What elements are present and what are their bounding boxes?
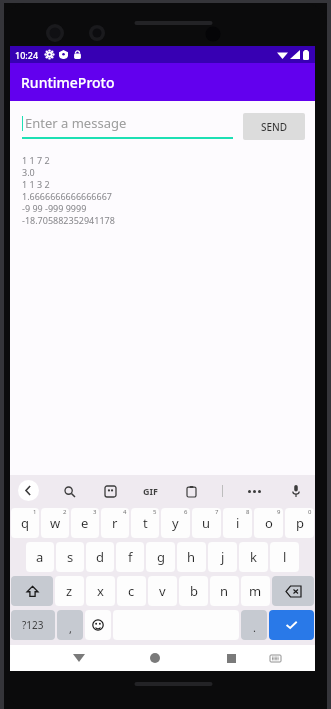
staticText: 1 bbox=[33, 508, 37, 516]
staticText: GIF bbox=[143, 485, 158, 497]
button[interactable]: Back bbox=[67, 646, 91, 670]
staticText: s bbox=[67, 548, 74, 566]
button[interactable]: Recents bbox=[219, 646, 243, 670]
button[interactable]: Emoji bbox=[85, 610, 111, 640]
staticText: w bbox=[50, 514, 61, 532]
button[interactable]: r bbox=[101, 508, 129, 538]
staticText: 3.0 bbox=[22, 166, 35, 178]
staticText: g bbox=[157, 548, 165, 566]
button[interactable]: f bbox=[116, 542, 144, 572]
staticText: l bbox=[283, 548, 287, 566]
button[interactable]: . bbox=[241, 610, 267, 640]
staticText: m bbox=[249, 582, 262, 600]
staticText: x bbox=[97, 582, 104, 600]
button[interactable]: j bbox=[208, 542, 237, 572]
button[interactable]: Stickers bbox=[99, 480, 121, 502]
staticText: d bbox=[96, 548, 104, 566]
staticText: 6 bbox=[184, 508, 188, 516]
button[interactable]: u bbox=[192, 508, 221, 538]
staticText: 2 bbox=[63, 508, 67, 516]
staticText: k bbox=[250, 548, 257, 566]
button[interactable]: z bbox=[55, 576, 84, 606]
staticText: j bbox=[221, 548, 225, 566]
staticText: 7 bbox=[215, 508, 219, 516]
staticText: 1 1 3 2 bbox=[22, 178, 50, 190]
button[interactable]: Search bbox=[58, 480, 80, 502]
staticText: 10:24 bbox=[15, 49, 39, 61]
staticText: a bbox=[36, 548, 44, 566]
staticText: p bbox=[296, 514, 304, 532]
staticText: ?123 bbox=[22, 618, 44, 632]
button[interactable]: ?123 bbox=[11, 610, 55, 640]
button[interactable]: m bbox=[241, 576, 270, 606]
staticText: z bbox=[66, 582, 73, 600]
button[interactable]: p bbox=[285, 508, 314, 538]
staticText: u bbox=[202, 514, 211, 532]
button[interactable]: Shift bbox=[11, 576, 53, 606]
staticText: , bbox=[69, 621, 72, 636]
button[interactable]: GIF bbox=[141, 485, 160, 497]
staticText: 8 bbox=[246, 508, 250, 516]
staticText: v bbox=[159, 582, 166, 600]
button[interactable]: y bbox=[161, 508, 190, 538]
button[interactable]: Clipboard bbox=[180, 480, 202, 502]
staticText: r bbox=[112, 514, 118, 532]
staticText: o bbox=[265, 514, 273, 532]
staticText: h bbox=[187, 548, 196, 566]
staticText: 5 bbox=[153, 508, 157, 516]
button[interactable]: x bbox=[86, 576, 115, 606]
button[interactable]: c bbox=[117, 576, 146, 606]
button[interactable]: o bbox=[254, 508, 283, 538]
staticText: y bbox=[172, 514, 179, 532]
staticText: e bbox=[81, 514, 89, 532]
staticText: q bbox=[21, 514, 29, 532]
button[interactable]: q bbox=[11, 508, 39, 538]
staticText: c bbox=[128, 582, 135, 600]
button[interactable]: Enter a message bbox=[22, 114, 233, 139]
staticText: -18.705882352941178 bbox=[22, 214, 115, 226]
staticText: . bbox=[253, 620, 256, 635]
button[interactable]: i bbox=[223, 508, 252, 538]
button[interactable]: SEND bbox=[243, 113, 305, 140]
staticText: Enter a message bbox=[25, 114, 127, 132]
staticText: 1.6666666666666667 bbox=[22, 190, 112, 202]
button[interactable]: Back bbox=[18, 480, 39, 501]
button[interactable]: Switch keyboard bbox=[265, 648, 285, 668]
staticText: SEND bbox=[261, 120, 288, 134]
button[interactable]: Enter bbox=[269, 610, 314, 640]
staticText: i bbox=[236, 514, 240, 532]
button[interactable]: w bbox=[41, 508, 69, 538]
button[interactable]: d bbox=[86, 542, 114, 572]
staticText: f bbox=[128, 548, 133, 566]
button[interactable]: t bbox=[131, 508, 159, 538]
button[interactable]: Home bbox=[143, 646, 167, 670]
button[interactable]: Backspace bbox=[272, 576, 314, 606]
staticText: 3 bbox=[93, 508, 97, 516]
button[interactable]: n bbox=[210, 576, 239, 606]
staticText: RuntimeProto bbox=[21, 73, 115, 92]
button[interactable]: s bbox=[56, 542, 84, 572]
staticText: t bbox=[143, 514, 148, 532]
button[interactable]: k bbox=[239, 542, 268, 572]
button[interactable]: a bbox=[26, 542, 54, 572]
staticText: b bbox=[190, 582, 198, 600]
staticText: 9 bbox=[277, 508, 281, 516]
button[interactable]: Voice input bbox=[285, 480, 307, 502]
button[interactable]: b bbox=[179, 576, 208, 606]
staticText: 4 bbox=[123, 508, 127, 516]
button[interactable]: More options bbox=[243, 480, 265, 502]
button[interactable]: , bbox=[57, 610, 83, 640]
button[interactable]: l bbox=[270, 542, 299, 572]
button[interactable]: v bbox=[148, 576, 177, 606]
staticText: n bbox=[220, 582, 229, 600]
button[interactable]: g bbox=[146, 542, 175, 572]
button[interactable]: h bbox=[177, 542, 206, 572]
staticText: 1 1 7 2 bbox=[22, 154, 50, 166]
staticText: 0 bbox=[308, 508, 312, 516]
button[interactable]: e bbox=[71, 508, 99, 538]
staticText: -9 99 -999 9999 bbox=[22, 202, 87, 214]
